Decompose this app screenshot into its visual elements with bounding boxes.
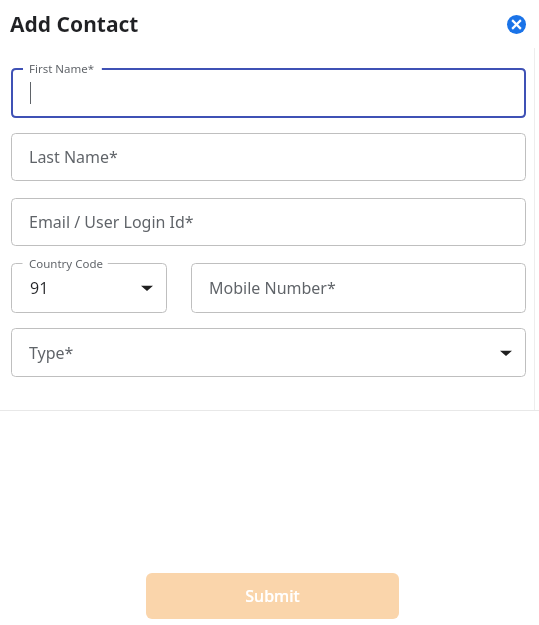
staticText: Add Contact [10,10,139,39]
button[interactable]: Mobile Number* [191,263,526,313]
button[interactable]: Email / User Login Id* [11,198,526,246]
staticText: Mobile Number* [209,277,336,299]
button[interactable]: First Name* [11,68,526,118]
button[interactable]: Country Code [11,263,167,313]
staticText: Email / User Login Id* [29,211,194,233]
button[interactable]: Type* [11,328,526,377]
button[interactable]: Submit [146,573,399,619]
button[interactable]: Last Name* [11,133,526,181]
staticText: Country Code [29,256,103,272]
staticText: Submit [245,585,300,607]
button[interactable]: Close [503,11,529,37]
staticText: Type* [29,342,74,364]
staticText: 91 [30,277,49,299]
staticText: Last Name* [29,146,118,168]
staticText: First Name* [29,61,95,77]
